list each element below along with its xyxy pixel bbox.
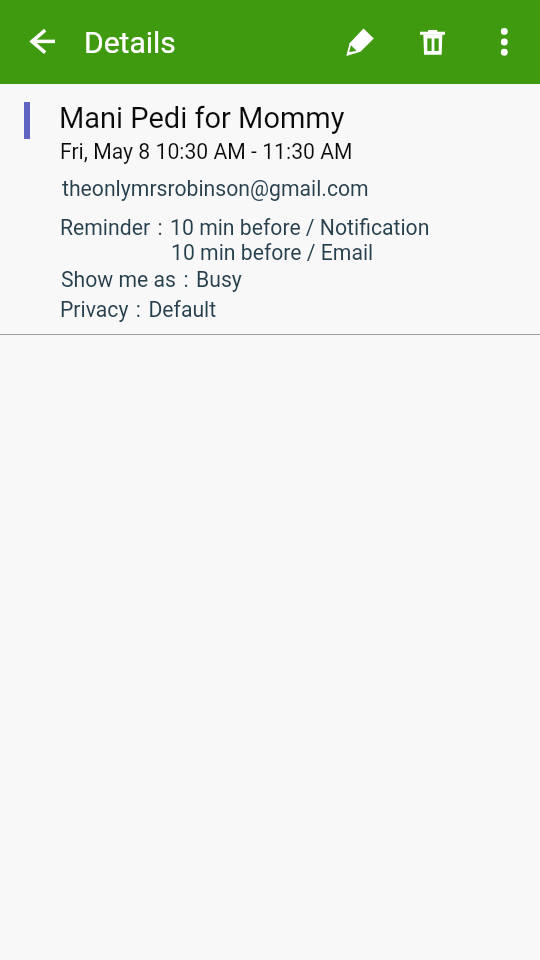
staticText: Mani Pedi for Mommy — [59, 101, 345, 135]
button[interactable]: More options — [480, 18, 528, 66]
staticText: Reminder : 10 min before / Notification — [60, 215, 430, 240]
staticText: Details — [84, 25, 176, 60]
staticText: Show me as : Busy — [61, 267, 242, 292]
button[interactable]: Back — [18, 18, 66, 66]
staticText: 10 min before / Email — [171, 240, 374, 265]
button[interactable]: Delete — [408, 18, 456, 66]
staticText: Privacy : Default — [60, 297, 217, 322]
staticText: Fri, May 8 10:30 AM - 11:30 AM — [60, 139, 353, 164]
staticText: theonlymrsrobinson@gmail.com — [62, 176, 369, 201]
button[interactable]: Edit — [336, 18, 384, 66]
button[interactable] — [0, 84, 540, 334]
